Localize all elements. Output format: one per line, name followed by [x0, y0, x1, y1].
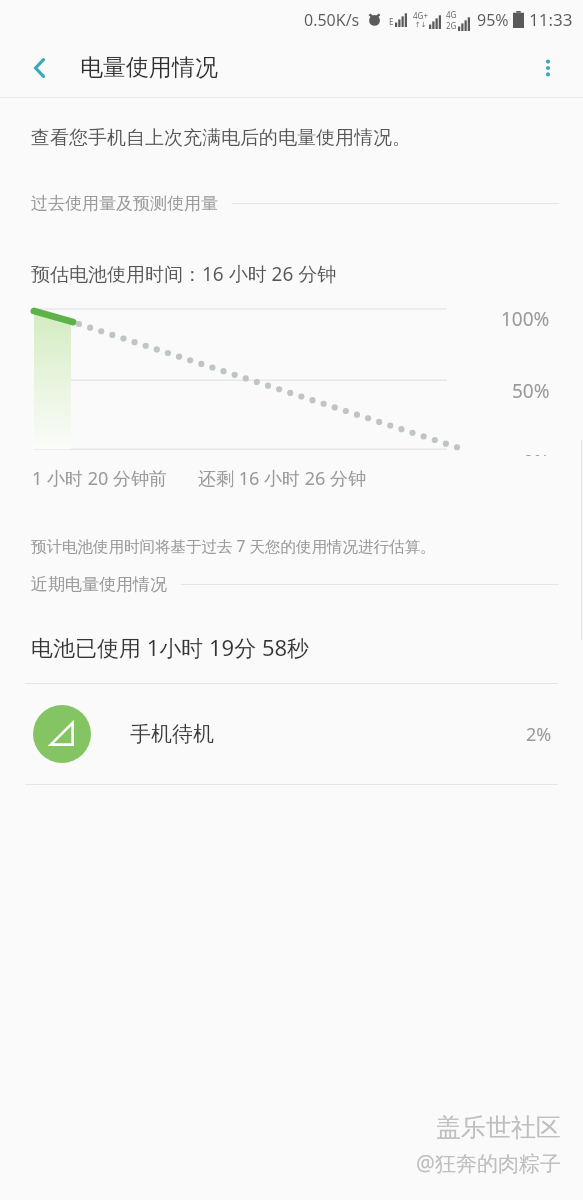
staticText: 查看您手机自上次充满电后的电量使用情况。: [31, 126, 411, 150]
staticText: 预估电池使用时间：16 小时 26 分钟: [31, 261, 337, 287]
button[interactable]: More options: [523, 43, 573, 93]
staticText: 电池已使用 1小时 19分 58秒: [31, 632, 310, 662]
button[interactable]: Back: [14, 42, 66, 94]
staticText: 50%: [512, 378, 550, 404]
staticText: 0%: [523, 449, 550, 456]
staticText: 2%: [526, 722, 552, 747]
staticText: 还剩 16 小时 26 分钟: [198, 466, 366, 491]
staticText: 2G: [446, 20, 457, 31]
staticText: 预计电池使用时间将基于过去 7 天您的使用情况进行估算。: [31, 535, 436, 556]
staticText: 4G+: [413, 10, 428, 21]
staticText: 95%: [477, 9, 509, 31]
staticText: 近期电量使用情况: [31, 574, 167, 595]
staticText: 100%: [501, 306, 550, 332]
staticText: 电量使用情况: [80, 53, 218, 82]
staticText: 盖乐世社区: [436, 1112, 561, 1143]
staticText: 4G: [446, 9, 457, 20]
staticText: E: [389, 16, 394, 27]
staticText: 1 小时 20 分钟前: [32, 466, 167, 491]
staticText: ↑↓: [415, 21, 427, 29]
staticText: 过去使用量及预测使用量: [31, 193, 218, 214]
staticText: 0.50K/s: [304, 9, 360, 31]
staticText: 11:33: [529, 8, 573, 31]
staticText: @狂奔的肉粽子: [416, 1149, 561, 1178]
button[interactable]: 手机待机: [0, 684, 583, 784]
staticText: 手机待机: [130, 721, 214, 747]
